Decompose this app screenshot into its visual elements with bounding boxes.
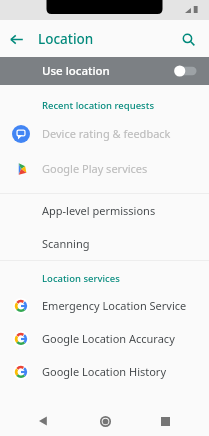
button[interactable]: Search — [172, 23, 204, 55]
staticText: App-level permissions — [42, 203, 156, 218]
staticText: Location — [38, 30, 94, 48]
button[interactable]: Google Location History — [0, 355, 209, 388]
staticText: Use location — [42, 63, 110, 79]
button[interactable]: Google Location Accuracy — [0, 322, 209, 355]
staticText: Scanning — [42, 236, 90, 251]
button[interactable]: Back — [0, 23, 32, 55]
button[interactable]: Device rating & feedback — [0, 116, 209, 151]
staticText: Google Location Accuracy — [42, 331, 175, 346]
staticText: Device rating & feedback — [42, 126, 171, 141]
staticText: Google Location History — [42, 364, 167, 379]
button[interactable]: Google Play services — [0, 151, 209, 186]
staticText: Google Play services — [42, 161, 148, 176]
button[interactable]: Scanning — [0, 227, 209, 260]
staticText: Location services — [42, 272, 120, 285]
button[interactable]: App-level permissions — [0, 194, 209, 227]
staticText: Emergency Location Service — [42, 298, 187, 313]
button[interactable]: Home — [88, 406, 122, 436]
button[interactable]: Back — [27, 406, 61, 436]
button[interactable]: Recents — [148, 406, 182, 436]
staticText: Recent location requests — [42, 99, 154, 112]
button[interactable]: Use location — [0, 57, 209, 85]
button[interactable]: Emergency Location Service — [0, 289, 209, 322]
